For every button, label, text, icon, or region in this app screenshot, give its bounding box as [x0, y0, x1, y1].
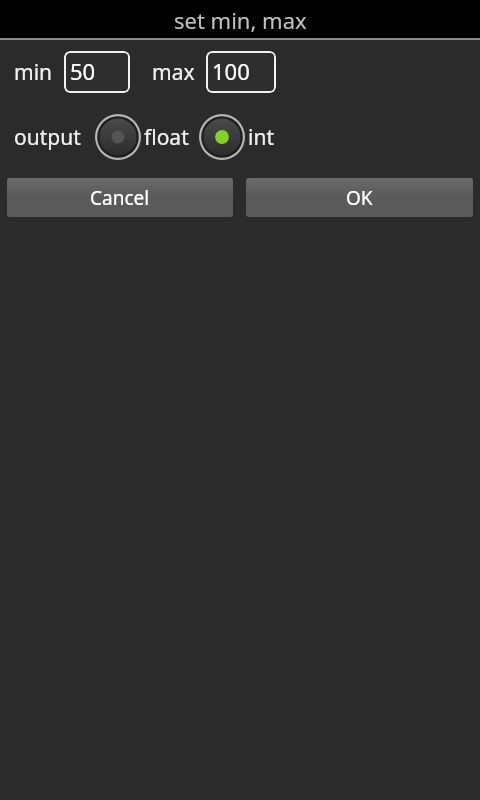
button[interactable]: Cancel — [7, 178, 233, 217]
staticText: Cancel — [90, 185, 150, 211]
button[interactable]: int — [199, 114, 274, 160]
staticText: output — [14, 123, 81, 152]
staticText: min — [14, 58, 53, 87]
staticText: 50 — [70, 56, 96, 86]
staticText: max — [152, 58, 195, 87]
staticText: 100 — [212, 56, 250, 86]
button[interactable]: 50 — [64, 51, 130, 93]
staticText: int — [248, 123, 274, 152]
button[interactable]: float — [95, 114, 189, 160]
button[interactable]: 100 — [206, 51, 276, 93]
staticText: float — [144, 123, 189, 152]
staticText: OK — [346, 185, 373, 211]
staticText: set min, max — [174, 5, 307, 35]
button[interactable]: OK — [246, 178, 473, 217]
